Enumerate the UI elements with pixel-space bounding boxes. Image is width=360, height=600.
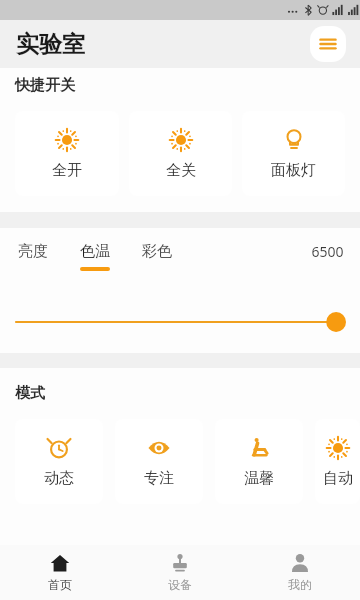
button[interactable] xyxy=(16,311,346,333)
staticText: 全关 xyxy=(166,161,196,180)
staticText: 实验室 xyxy=(16,30,85,59)
staticText: 面板灯 xyxy=(271,161,316,180)
staticText: 设备 xyxy=(168,577,192,592)
staticText: 模式 xyxy=(15,384,45,403)
button[interactable]: 全关 xyxy=(129,111,232,196)
staticText: 专注 xyxy=(144,469,174,488)
button[interactable]: 我的 xyxy=(240,545,360,600)
staticText: 自动 xyxy=(323,469,353,488)
staticText: 全开 xyxy=(52,161,82,180)
button[interactable]: 色温 xyxy=(78,242,112,271)
staticText: 快捷开关 xyxy=(15,76,75,95)
button[interactable]: 亮度 xyxy=(16,242,50,271)
staticText: 我的 xyxy=(288,577,312,592)
staticText: 首页 xyxy=(48,577,72,592)
button[interactable]: 温馨 xyxy=(215,419,303,504)
button[interactable]: 首页 xyxy=(0,545,120,600)
button[interactable]: 全开 xyxy=(15,111,119,196)
staticText: 彩色 xyxy=(142,242,172,261)
button[interactable]: 设备 xyxy=(120,545,240,600)
staticText: 温馨 xyxy=(244,469,274,488)
button[interactable]: 专注 xyxy=(115,419,203,504)
staticText: 动态 xyxy=(44,469,74,488)
button[interactable]: 彩色 xyxy=(140,242,174,271)
button[interactable]: 面板灯 xyxy=(242,111,345,196)
button[interactable]: Menu xyxy=(310,26,346,62)
staticText: 亮度 xyxy=(18,242,48,261)
staticText: 6500 xyxy=(311,242,344,261)
staticText: 色温 xyxy=(80,242,110,261)
button[interactable]: 动态 xyxy=(15,419,103,504)
button[interactable]: 自动 xyxy=(315,419,360,504)
